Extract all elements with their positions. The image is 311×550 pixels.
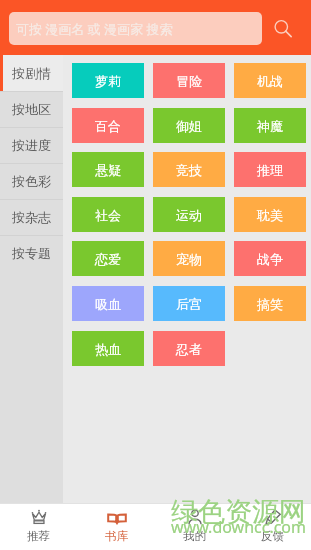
staticText: 社会 — [95, 207, 121, 223]
staticText: 搞笑 — [257, 296, 283, 312]
button[interactable]: 萝莉 — [72, 63, 144, 98]
staticText: 反馈 — [261, 529, 284, 543]
staticText: 忍者 — [176, 341, 202, 357]
button[interactable]: Search — [266, 11, 302, 47]
staticText: 萝莉 — [95, 73, 121, 89]
button[interactable]: 后宫 — [153, 286, 225, 321]
staticText: 按专题 — [12, 245, 51, 261]
button[interactable]: 机战 — [234, 63, 306, 98]
button[interactable]: 反馈 — [233, 503, 311, 550]
staticText: www.downcc.com — [171, 516, 307, 538]
button[interactable]: 百合 — [72, 108, 144, 143]
staticText: 耽美 — [257, 207, 283, 223]
staticText: 百合 — [95, 118, 121, 134]
button[interactable]: 按进度 — [0, 127, 63, 163]
button[interactable]: 宠物 — [153, 241, 225, 276]
staticText: 机战 — [257, 73, 283, 89]
button[interactable]: 按地区 — [0, 91, 63, 127]
button[interactable]: 神魔 — [234, 108, 306, 143]
staticText: 吸血 — [95, 296, 121, 312]
button[interactable]: 御姐 — [153, 108, 225, 143]
staticText: 冒险 — [176, 73, 202, 89]
staticText: 按进度 — [12, 137, 51, 153]
staticText: 悬疑 — [95, 162, 121, 178]
button[interactable]: 恋爱 — [72, 241, 144, 276]
button[interactable]: 推理 — [234, 152, 306, 187]
button[interactable]: 推荐 — [0, 503, 77, 550]
button[interactable]: 搞笑 — [234, 286, 306, 321]
staticText: 按剧情 — [12, 65, 51, 81]
staticText: 书库 — [105, 529, 128, 543]
staticText: 按地区 — [12, 101, 51, 117]
button[interactable]: 按专题 — [0, 235, 63, 271]
staticText: 神魔 — [257, 118, 283, 134]
staticText: 按杂志 — [12, 209, 51, 225]
staticText: 推荐 — [27, 529, 50, 543]
staticText: 恋爱 — [95, 251, 121, 267]
button[interactable]: 按剧情 — [0, 55, 63, 91]
staticText: 我的 — [183, 529, 206, 543]
button[interactable]: 按色彩 — [0, 163, 63, 199]
button[interactable]: 按杂志 — [0, 199, 63, 235]
staticText: 按色彩 — [12, 173, 51, 189]
button[interactable]: 书库 — [77, 503, 155, 550]
button[interactable]: 我的 — [155, 503, 233, 550]
staticText: 运动 — [176, 207, 202, 223]
button[interactable]: 悬疑 — [72, 152, 144, 187]
staticText: 御姐 — [176, 118, 202, 134]
button[interactable]: 战争 — [234, 241, 306, 276]
staticText: 绿色资源网 — [171, 495, 306, 529]
staticText: 推理 — [257, 162, 283, 178]
staticText: 竞技 — [176, 162, 202, 178]
button[interactable]: 热血 — [72, 331, 144, 366]
button[interactable]: 忍者 — [153, 331, 225, 366]
button[interactable]: 可按 漫画名 或 漫画家 搜索 — [9, 12, 262, 45]
button[interactable]: 社会 — [72, 197, 144, 232]
staticText: 宠物 — [176, 251, 202, 267]
button[interactable]: 耽美 — [234, 197, 306, 232]
button[interactable]: 吸血 — [72, 286, 144, 321]
button[interactable]: 运动 — [153, 197, 225, 232]
staticText: 战争 — [257, 251, 283, 267]
button[interactable]: 竞技 — [153, 152, 225, 187]
staticText: 热血 — [95, 341, 121, 357]
staticText: 后宫 — [176, 296, 202, 312]
button[interactable]: 冒险 — [153, 63, 225, 98]
staticText: 可按 漫画名 或 漫画家 搜索 — [16, 20, 173, 38]
